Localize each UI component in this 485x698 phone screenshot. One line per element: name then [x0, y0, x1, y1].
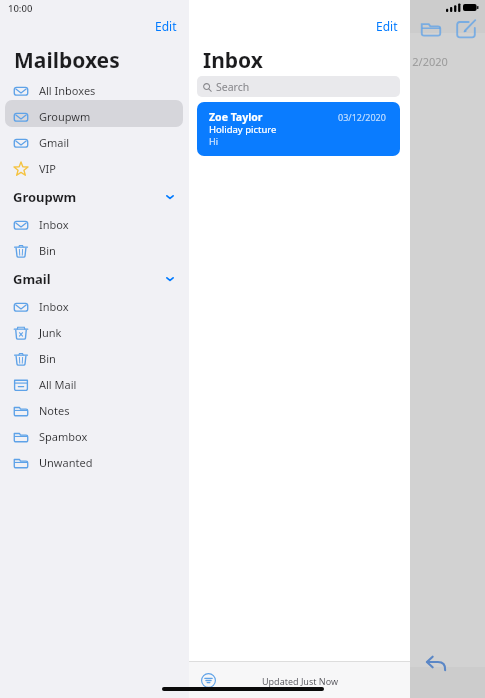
button[interactable]: Filter [201, 673, 216, 688]
staticText: VIP [39, 161, 56, 176]
button[interactable]: Groupwm [5, 104, 183, 129]
staticText: 10:00 [8, 2, 33, 15]
button[interactable]: Edit [155, 18, 177, 34]
button[interactable]: Search [197, 76, 400, 97]
staticText: Gmail [13, 270, 51, 288]
button[interactable]: Inbox [5, 294, 183, 319]
staticText: Notes [39, 403, 70, 418]
staticText: Edit [376, 18, 398, 34]
button[interactable]: Inbox [5, 212, 183, 237]
staticText: Groupwm [13, 188, 77, 206]
staticText: Hi [209, 135, 218, 147]
staticText: Inbox [39, 299, 69, 314]
staticText: Unwanted [39, 455, 93, 470]
button[interactable]: Bin [5, 346, 183, 371]
staticText: Groupwm [39, 109, 91, 124]
button[interactable]: Folder [420, 18, 442, 40]
button[interactable]: VIP [5, 156, 183, 181]
staticText: Junk [39, 325, 62, 340]
button[interactable]: Groupwm [5, 185, 183, 209]
staticText: Gmail [39, 135, 70, 150]
button[interactable]: Gmail [5, 130, 183, 155]
button[interactable]: Compose [455, 18, 477, 40]
button[interactable]: Zoe Taylor [197, 102, 400, 156]
button[interactable]: Unwanted [5, 450, 183, 475]
staticText: Inbox [39, 217, 69, 232]
staticText: Updated Just Now [262, 675, 338, 687]
staticText: Spambox [39, 429, 88, 444]
staticText: Bin [39, 351, 56, 366]
staticText: All Mail [39, 377, 77, 392]
staticText: Search [216, 80, 250, 94]
button[interactable]: Reply [424, 650, 448, 674]
button[interactable]: Gmail [5, 267, 183, 291]
staticText: 03/12/2020 [338, 111, 386, 123]
staticText: Edit [155, 18, 177, 34]
staticText: Inbox [203, 46, 263, 75]
button[interactable]: Bin [5, 238, 183, 263]
staticText: Zoe Taylor [209, 110, 263, 124]
staticText: Mailboxes [14, 46, 120, 75]
button[interactable]: Junk [5, 320, 183, 345]
staticText: All Inboxes [39, 83, 96, 98]
button[interactable]: All Mail [5, 372, 183, 397]
staticText: 12/2020 [406, 54, 448, 69]
button[interactable]: Edit [376, 18, 398, 34]
button[interactable]: Notes [5, 398, 183, 423]
button[interactable]: All Inboxes [5, 78, 183, 103]
button[interactable]: Spambox [5, 424, 183, 449]
staticText: Holiday picture [209, 123, 277, 136]
staticText: Bin [39, 243, 56, 258]
